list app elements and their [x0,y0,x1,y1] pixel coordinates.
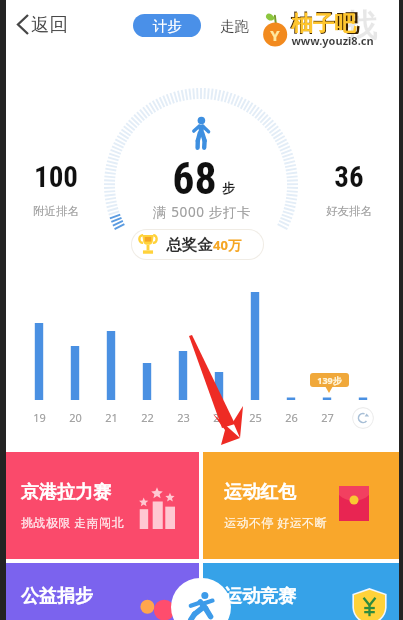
button[interactable]: 总奖金 [132,230,263,259]
staticText: 20 [69,410,82,425]
staticText: 运动竞赛 [224,585,296,608]
button[interactable]: 公益捐步 [0,563,199,620]
staticText: 挑战极限 走南闯北 [21,514,124,530]
button[interactable]: 运动竞赛 [203,563,403,620]
button[interactable]: 返回 [11,9,74,40]
button[interactable]: 京港拉力赛 [0,452,199,559]
button[interactable]: Refresh [352,407,374,429]
staticText: 68 [172,153,217,205]
staticText: 100 [34,160,78,194]
staticText: www.youzi8.cn [291,33,374,48]
staticText: 19 [33,410,46,425]
staticText: 27 [321,410,334,425]
staticText: 22 [141,410,154,425]
staticText: 好友排名 [326,204,372,218]
staticText: 柚子吧 [291,10,356,37]
staticText: 24 [213,410,226,425]
staticText: 21 [105,410,118,425]
staticText: 找 [345,6,377,46]
staticText: 25 [249,410,262,425]
staticText: 运动不停 好运不断 [224,514,327,530]
staticText: 返回 [31,13,68,36]
staticText: 139步 [317,374,342,386]
button[interactable]: 计步 [133,14,201,37]
staticText: 步 [222,180,235,196]
staticText: 26 [285,410,298,425]
staticText: 满 5000 步打卡 [153,203,251,221]
staticText: 附近排名 [33,204,79,218]
staticText: 走跑 [220,17,249,35]
staticText: 柚子吧 [290,9,359,38]
staticText: 计步 [153,17,182,35]
staticText: 36 [334,160,364,194]
button[interactable]: 走跑 [214,14,254,37]
staticText: 运动红包 [224,481,296,504]
button[interactable]: 运动红包 [203,452,403,559]
staticText: 总奖金 [166,235,213,255]
staticText: 23 [177,410,190,425]
staticText: 公益捐步 [21,585,93,608]
staticText: 40万 [213,236,241,254]
button[interactable]: Start running [171,578,231,620]
staticText: Y [270,25,280,45]
staticText: 京港拉力赛 [21,481,111,504]
